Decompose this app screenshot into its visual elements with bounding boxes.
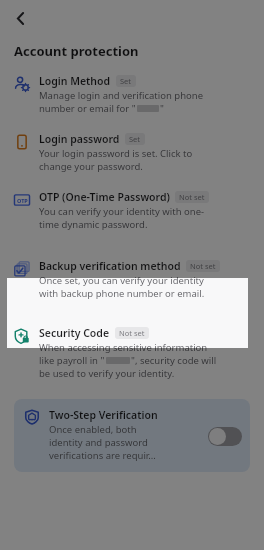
button[interactable]: Login Method — [0, 71, 264, 118]
button[interactable]: Security Code — [0, 323, 264, 383]
button[interactable]: Login password — [0, 129, 264, 176]
staticText: Manage login and verification phone — [39, 89, 203, 102]
staticText: Login Method — [39, 74, 111, 88]
staticText: Two-Step Verification — [49, 408, 158, 422]
staticText: Set — [120, 76, 132, 86]
button[interactable]: Backup verification method — [0, 256, 264, 303]
staticText: be used to verify your identity. — [39, 367, 175, 380]
staticText: time dynamic password. — [39, 218, 148, 231]
staticText: OTP (One-Time Password) — [39, 190, 170, 204]
staticText: Set — [129, 134, 141, 144]
staticText: number or email for " — [39, 102, 136, 115]
staticText: ", security code will — [131, 354, 217, 367]
staticText: verifications are requir… — [49, 449, 156, 462]
staticText: like payroll in " — [39, 354, 105, 367]
staticText: Not set — [119, 328, 145, 338]
button[interactable]: Two-Step Verification toggle — [208, 427, 242, 446]
staticText: Security Code — [39, 326, 110, 340]
staticText: When accessing sensitive information — [39, 341, 208, 354]
staticText: OTP — [17, 197, 28, 204]
staticText: with backup phone number or email. — [39, 287, 205, 300]
button[interactable]: OTP — [0, 187, 264, 234]
button[interactable]: Back — [7, 5, 33, 31]
staticText: Login password — [39, 132, 120, 146]
staticText: Not set — [179, 192, 205, 202]
staticText: Backup verification method — [39, 259, 181, 273]
staticText: Once enabled, both — [49, 423, 137, 436]
staticText: You can verify your identity with one- — [39, 205, 205, 218]
staticText: Not set — [190, 261, 216, 271]
staticText: Your login password is set. Click to — [39, 147, 193, 160]
staticText: identity and password — [49, 436, 148, 449]
staticText: Account protection — [14, 42, 139, 60]
staticText: Once set, you can verify your identity — [39, 274, 204, 287]
button[interactable]: Two-Step Verification — [14, 399, 250, 472]
staticText: change your password. — [39, 160, 143, 173]
staticText: " — [160, 102, 164, 115]
